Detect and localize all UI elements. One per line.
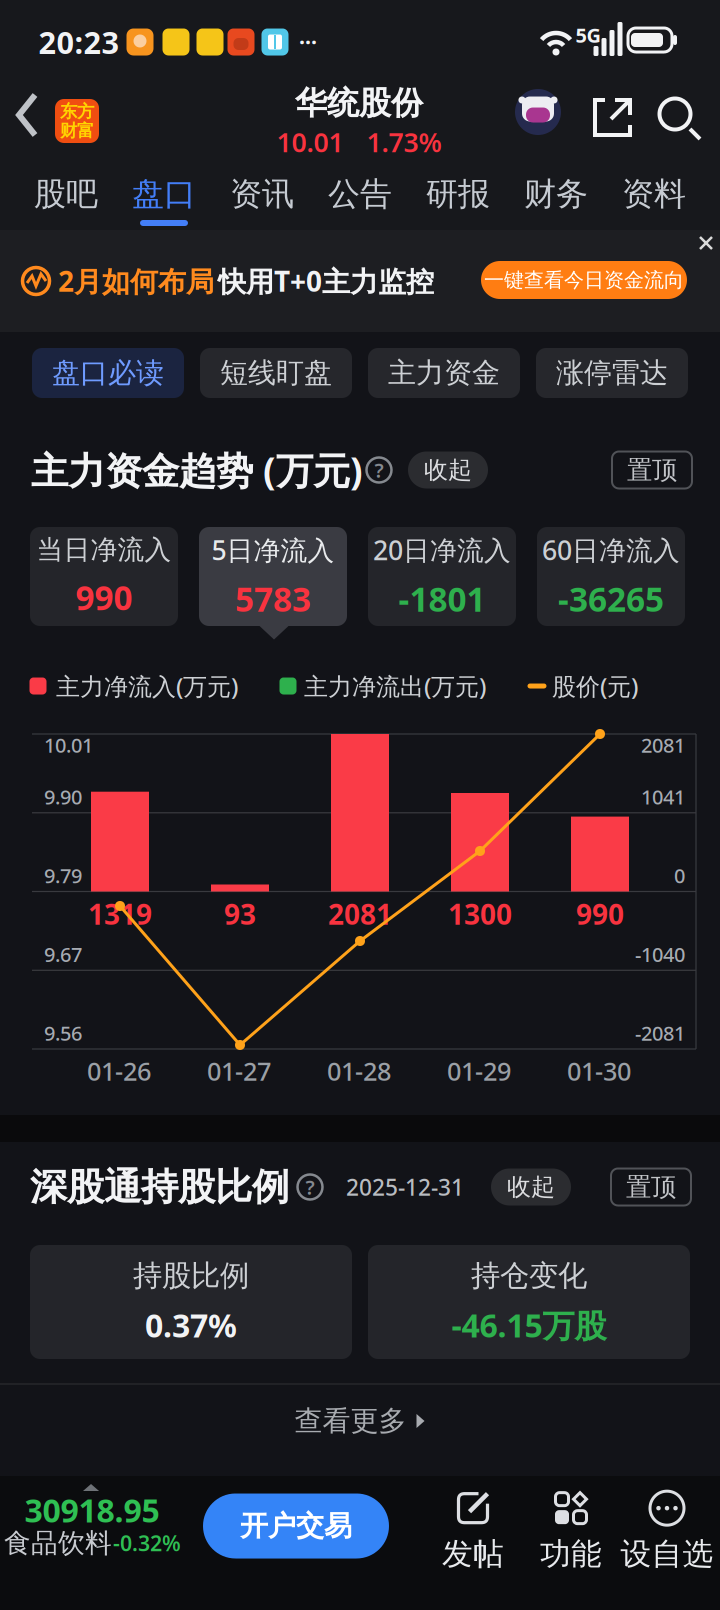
staticText: 资料 <box>622 174 686 214</box>
staticText: 01-27 <box>207 1054 271 1088</box>
staticText: 主力净流出(万元) <box>304 670 486 702</box>
button[interactable]: 5日净流入 <box>199 527 347 626</box>
staticText: 发帖 <box>442 1535 504 1573</box>
button[interactable]: 盘口必读 <box>32 348 184 398</box>
button[interactable]: 涨停雷达 <box>536 348 688 398</box>
button[interactable]: 说明 <box>366 457 391 483</box>
staticText: 快用T+0主力监控 <box>218 262 434 300</box>
staticText: 1319 <box>88 895 152 933</box>
staticText: 1300 <box>448 895 512 933</box>
staticText: 30918.95 <box>24 1489 159 1531</box>
staticText: 1.73% <box>366 124 441 160</box>
button[interactable]: 查看更多 <box>0 1393 720 1449</box>
button[interactable]: 财务 <box>508 160 604 228</box>
staticText: 5日净流入 <box>211 532 334 568</box>
staticText: 0.37% <box>145 1304 237 1346</box>
staticText: ? <box>305 1174 314 1200</box>
button[interactable]: 收起 <box>491 1168 571 1205</box>
staticText: -1040 <box>635 941 685 968</box>
button[interactable]: Search <box>637 76 720 160</box>
staticText: 10.01 <box>44 732 93 758</box>
staticText: 东方 <box>60 101 94 122</box>
staticText: -1801 <box>398 577 485 621</box>
button[interactable]: 股吧 <box>18 160 114 228</box>
button[interactable]: AI assistant <box>515 89 561 135</box>
button[interactable]: 置顶 <box>612 451 692 488</box>
button[interactable]: 资料 <box>606 160 702 228</box>
staticText: 短线盯盘 <box>220 356 332 390</box>
staticText: 主力资金趋势 (万元) <box>31 445 363 495</box>
staticText: 深股通持股比例 <box>30 1164 289 1210</box>
staticText: 持仓变化 <box>471 1258 587 1294</box>
button[interactable]: 东方财富 <box>55 99 99 143</box>
staticText: 财务 <box>524 174 588 214</box>
staticText: 主力资金 <box>388 356 500 390</box>
button[interactable]: 公告 <box>312 160 408 228</box>
staticText: 01-28 <box>327 1054 391 1088</box>
staticText: 2081 <box>328 895 392 933</box>
staticText: -36265 <box>558 577 664 621</box>
staticText: 0 <box>674 862 685 889</box>
staticText: 2081 <box>641 732 685 758</box>
staticText: 2月如何布局 <box>58 262 214 300</box>
staticText: 股价(元) <box>552 670 638 702</box>
button[interactable]: 研报 <box>410 160 506 228</box>
button[interactable]: 功能 <box>540 1491 602 1573</box>
staticText: 华统股份 <box>295 83 423 123</box>
staticText: 当日净流入 <box>36 533 171 566</box>
staticText: 设自选 <box>620 1535 713 1573</box>
button[interactable]: Share <box>569 77 653 161</box>
button[interactable]: 短线盯盘 <box>200 348 352 398</box>
staticText: 5783 <box>235 577 311 621</box>
staticText: 9.90 <box>44 783 82 810</box>
button[interactable]: Close <box>690 227 720 259</box>
staticText: 20日净流入 <box>373 532 511 568</box>
button[interactable]: 30918.95 <box>0 1494 190 1574</box>
button[interactable]: Back <box>2 83 52 147</box>
button[interactable]: 广告 <box>0 230 720 332</box>
staticText: 20:23 <box>38 22 119 62</box>
button[interactable]: 主力资金 <box>368 348 520 398</box>
button[interactable]: 发帖 <box>442 1491 504 1573</box>
staticText: -0.32% <box>113 1529 181 1557</box>
staticText: 食品饮料 <box>4 1527 112 1559</box>
staticText: 主力净流入(万元) <box>56 670 238 702</box>
staticText: 01-30 <box>567 1054 631 1088</box>
button[interactable]: 当日净流入 <box>30 527 178 626</box>
staticText: 查看更多 <box>294 1404 406 1438</box>
staticText: 01-29 <box>447 1054 511 1088</box>
button[interactable]: 60日净流入 <box>537 527 685 626</box>
button[interactable]: 20日净流入 <box>368 527 516 626</box>
button[interactable]: 盘口 <box>116 160 212 228</box>
staticText: 60日净流入 <box>542 532 680 568</box>
staticText: 收起 <box>507 1172 555 1202</box>
staticText: -46.15万股 <box>451 1304 606 1346</box>
button[interactable]: 收起 <box>408 451 488 488</box>
button[interactable]: 设自选 <box>620 1491 713 1573</box>
staticText: 5G <box>575 22 600 48</box>
staticText: -2081 <box>635 1020 685 1046</box>
staticText: 公告 <box>328 174 392 214</box>
staticText: 研报 <box>426 174 490 214</box>
staticText: 93 <box>224 895 256 933</box>
staticText: 990 <box>75 575 132 619</box>
staticText: 1041 <box>641 783 685 810</box>
staticText: ? <box>374 457 383 483</box>
staticText: 置顶 <box>626 1171 676 1202</box>
staticText: 资讯 <box>230 174 294 214</box>
button[interactable]: 开户交易 <box>203 1493 389 1558</box>
staticText: 股吧 <box>34 174 98 214</box>
staticText: 990 <box>576 895 624 933</box>
button[interactable]: 持股比例 <box>30 1245 352 1359</box>
staticText: 10.01 <box>276 124 343 160</box>
button[interactable]: 置顶 <box>611 1168 691 1205</box>
button[interactable]: 资讯 <box>214 160 310 228</box>
staticText: 9.79 <box>44 862 82 889</box>
staticText: 01-26 <box>87 1054 151 1088</box>
button[interactable]: 说明 <box>297 1174 322 1200</box>
staticText: 一键查看今日资金流向 <box>484 268 684 292</box>
staticText: 置顶 <box>627 454 677 485</box>
staticText: 持股比例 <box>133 1258 249 1294</box>
button[interactable]: 持仓变化 <box>368 1245 690 1359</box>
staticText: 盘口必读 <box>52 356 164 390</box>
